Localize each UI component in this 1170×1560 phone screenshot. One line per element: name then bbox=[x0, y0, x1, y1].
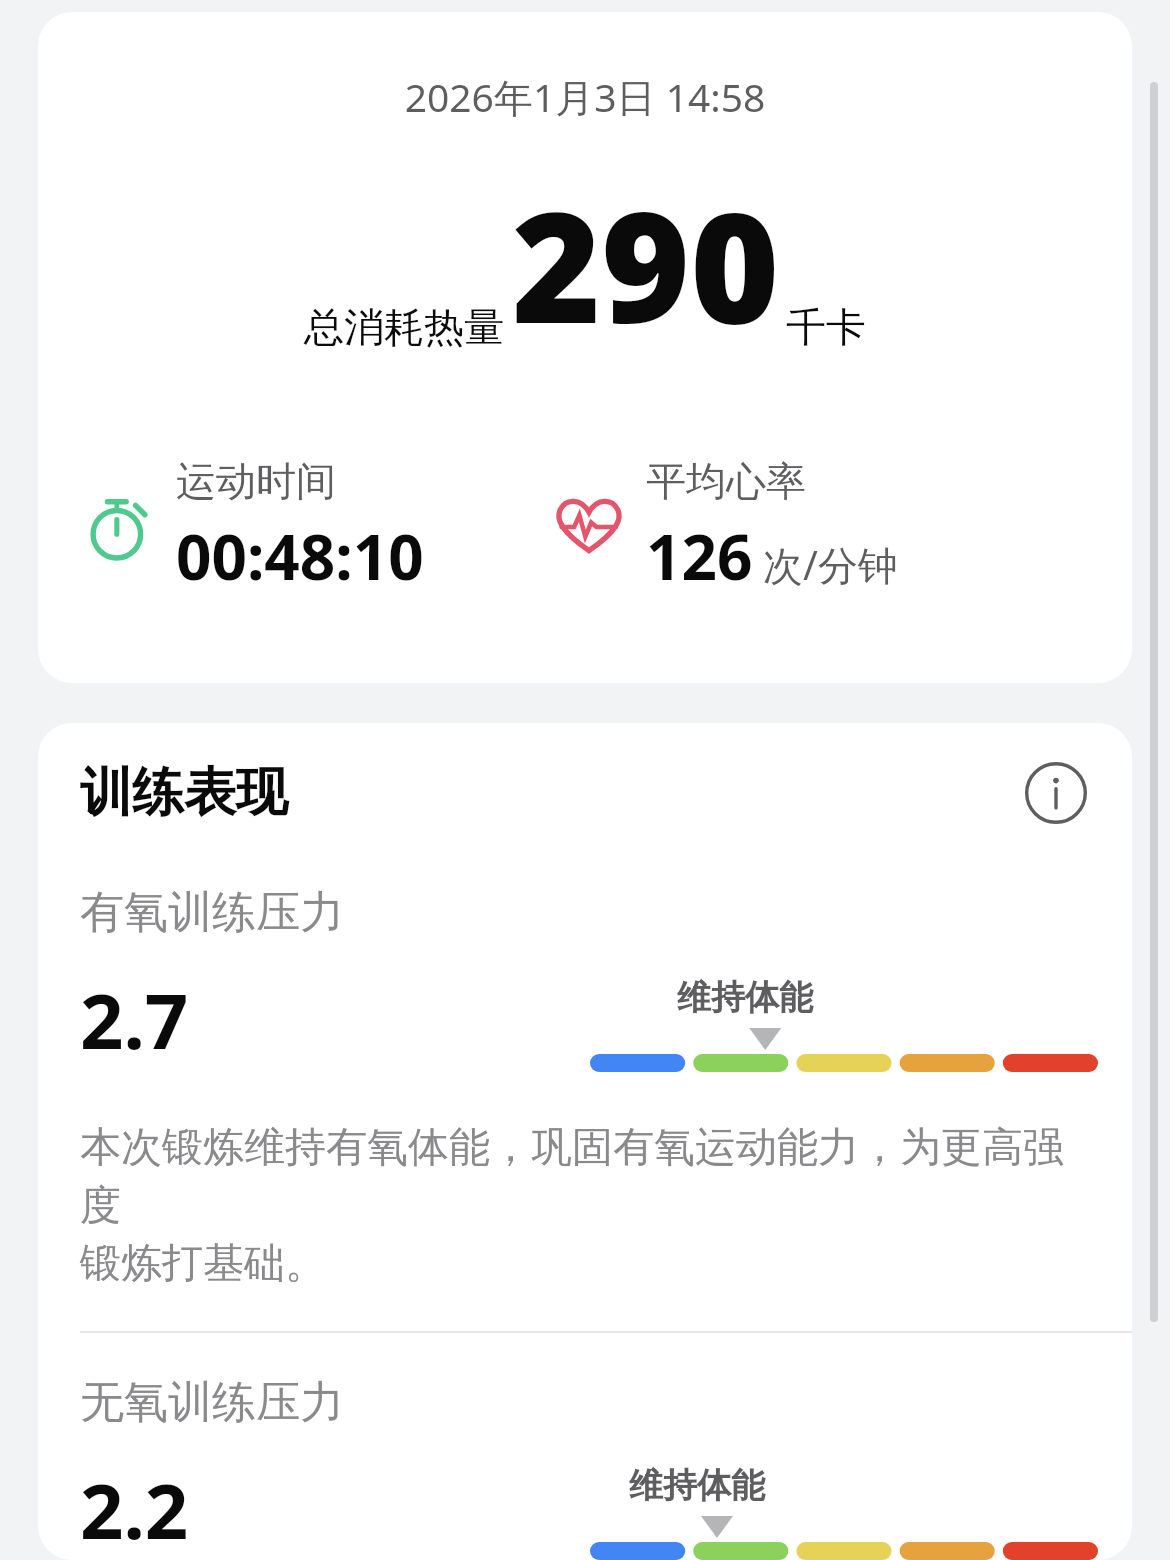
button[interactable]: Info bbox=[1022, 759, 1090, 827]
staticText: 126 bbox=[646, 514, 753, 598]
staticText: 训练表现 bbox=[80, 760, 288, 826]
staticText: 290 bbox=[512, 161, 780, 368]
staticText: 维持体能 bbox=[629, 1464, 765, 1507]
staticText: 维持体能 bbox=[677, 976, 813, 1019]
staticText: 总消耗热量 bbox=[304, 302, 504, 352]
staticText: 千卡 bbox=[786, 302, 866, 352]
staticText: 本次锻炼维持有氧体能，巩固有氧运动能力，为更高强度 锻炼打基础。 bbox=[80, 1122, 1098, 1289]
staticText: 次/分钟 bbox=[763, 537, 898, 592]
button[interactable]: Average heart rate bbox=[550, 456, 1020, 598]
staticText: 有氧训练压力 bbox=[80, 885, 344, 940]
other: Duration bbox=[83, 491, 155, 563]
staticText: 2026年1月3日 14:58 bbox=[38, 70, 1132, 123]
staticText: 无氧训练压力 bbox=[80, 1375, 344, 1430]
staticText: 2.7 bbox=[80, 968, 189, 1072]
other: Average heart rate bbox=[552, 490, 626, 564]
staticText: 00:48:10 bbox=[176, 514, 424, 598]
staticText: 2.2 bbox=[80, 1458, 189, 1560]
button[interactable]: Duration bbox=[80, 456, 550, 598]
staticText: 平均心率 bbox=[646, 456, 806, 506]
staticText: 运动时间 bbox=[176, 456, 336, 506]
